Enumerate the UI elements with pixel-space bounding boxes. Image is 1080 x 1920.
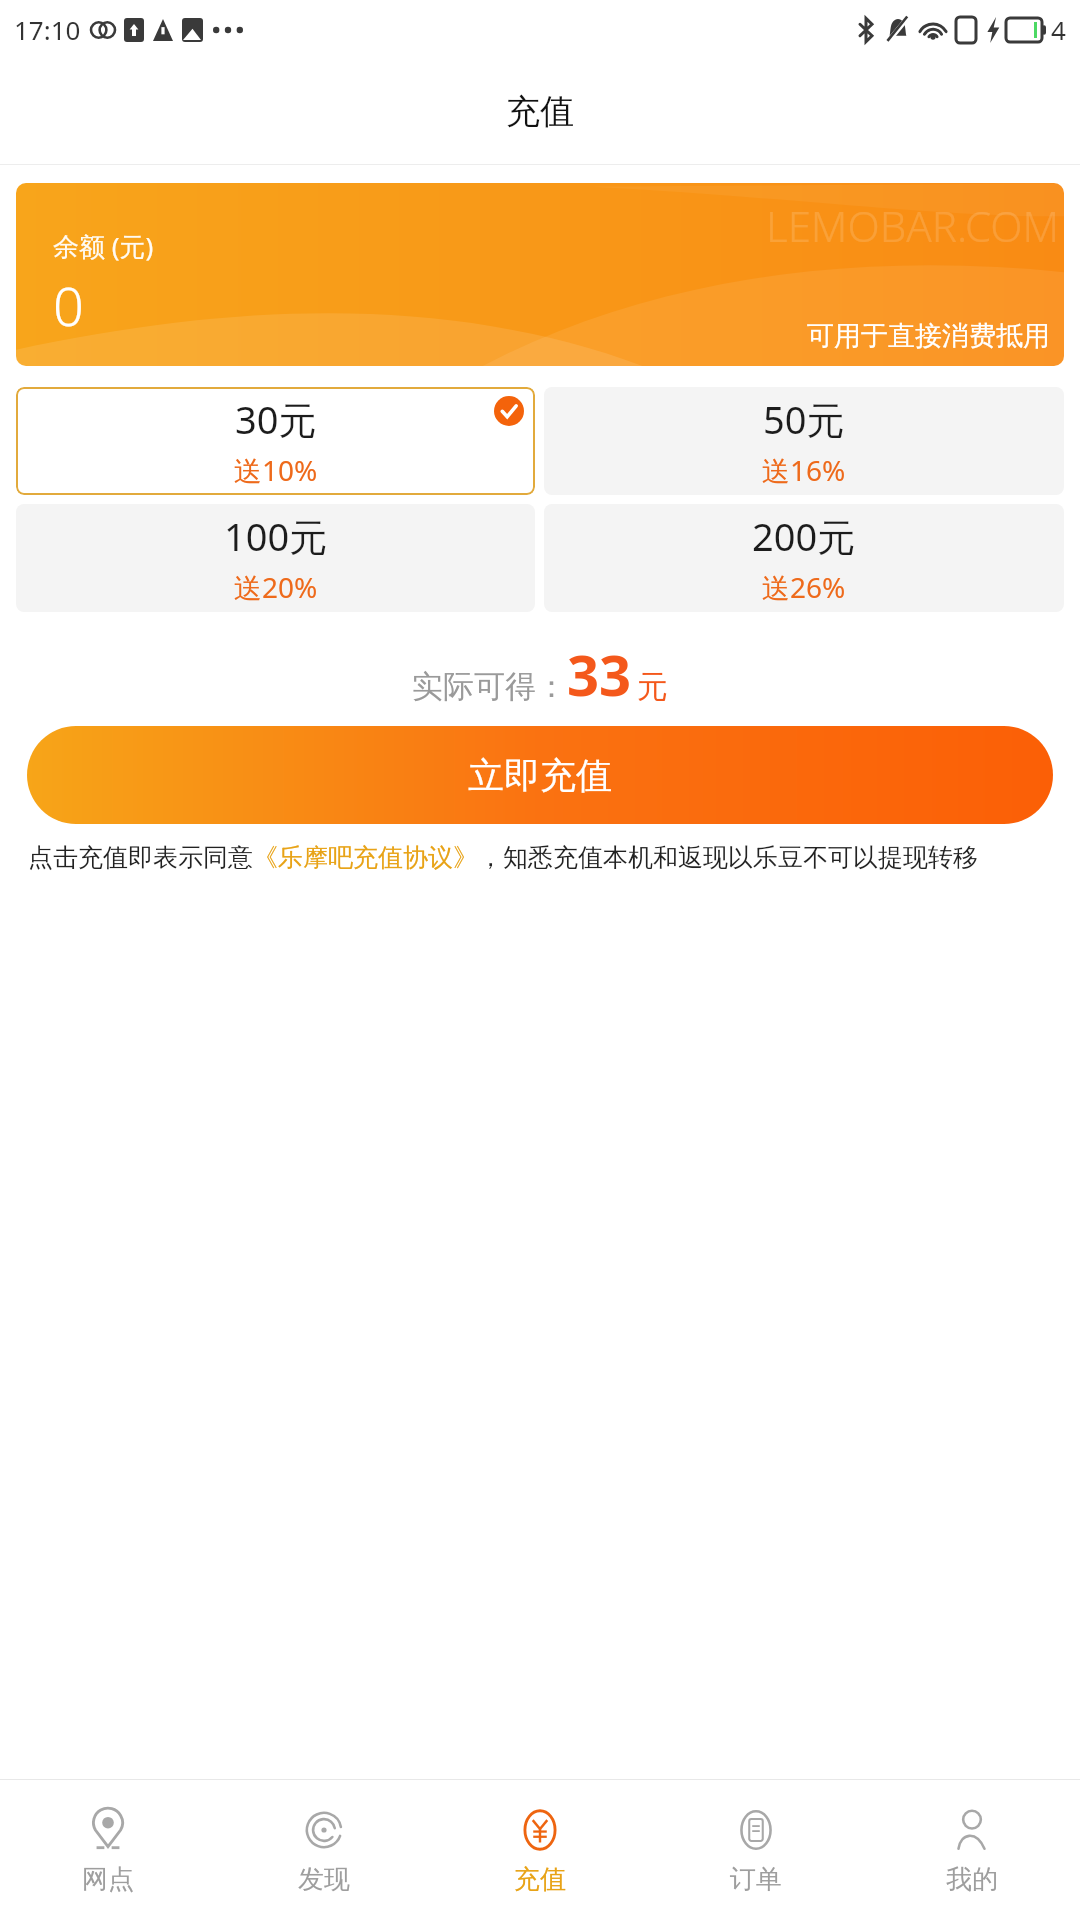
staticText: 点击充值即表示同意《乐摩吧充值协议》，知悉充值本机和返现以乐豆不可以提现转移	[28, 842, 978, 873]
staticText: 4	[1051, 12, 1066, 47]
staticText: 50元	[763, 393, 845, 445]
staticText: 可用于直接消费抵用	[807, 319, 1050, 353]
button[interactable]: 50元	[544, 387, 1064, 495]
staticText: 我的	[946, 1863, 998, 1896]
button[interactable]: 200元	[544, 504, 1064, 612]
staticText: 网点	[82, 1863, 134, 1896]
staticText: 17:10	[14, 12, 81, 47]
staticText: 送26%	[762, 568, 846, 606]
button[interactable]: 立即充值	[27, 726, 1053, 824]
staticText: 送20%	[234, 568, 318, 606]
button[interactable]: 充值	[432, 1796, 648, 1904]
button[interactable]: 我的	[864, 1796, 1080, 1904]
staticText: 30元	[235, 393, 317, 445]
staticText: 100元	[224, 510, 328, 562]
button[interactable]: 发现	[216, 1796, 432, 1904]
button[interactable]: 订单	[648, 1796, 864, 1904]
button[interactable]: 30元	[16, 387, 535, 495]
staticText: LEMOBAR.COM	[766, 197, 1060, 254]
staticText: 送10%	[234, 451, 318, 489]
staticText: 立即充值	[468, 753, 612, 798]
button[interactable]: 点击充值即表示同意《乐摩吧充值协议》，知悉充值本机和返现以乐豆不可以提现转移	[28, 842, 1052, 873]
staticText: 元	[637, 667, 668, 706]
staticText: 200元	[752, 510, 856, 562]
staticText: 0	[53, 268, 84, 342]
staticText: 余额 (元)	[53, 228, 154, 264]
staticText: 订单	[730, 1863, 782, 1896]
button[interactable]: 网点	[0, 1796, 216, 1904]
staticText: 发现	[298, 1863, 350, 1896]
staticText: 充值	[506, 90, 574, 133]
staticText: 送16%	[762, 451, 846, 489]
staticText: 充值	[514, 1863, 566, 1896]
button[interactable]: LEMOBAR.COM	[16, 183, 1064, 366]
staticText: 实际可得：	[412, 667, 567, 706]
staticText: 33	[567, 636, 632, 712]
button[interactable]: 100元	[16, 504, 535, 612]
